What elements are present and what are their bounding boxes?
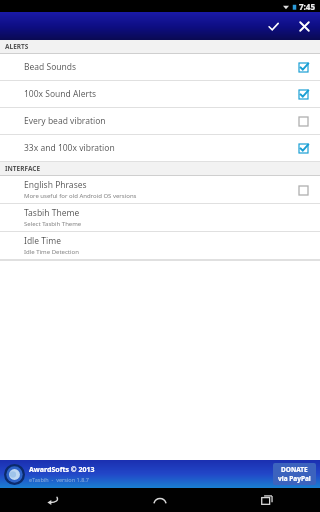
staticText: Idle Time Detection [24,248,79,256]
button[interactable]: AwardSofts © 2013 [0,460,320,488]
staticText: 33x and 100x vibration [24,142,115,154]
staticText: Select Tasbih Theme [24,220,82,228]
button[interactable]: Every bead vibration [0,108,320,134]
button[interactable]: Checked [294,139,312,157]
button[interactable]: Bead Sounds [0,54,320,80]
staticText: ALERTS [5,42,29,51]
button[interactable]: English Phrases [0,176,320,203]
button[interactable]: Back [0,488,106,512]
staticText: Every bead vibration [24,115,106,127]
button[interactable]: Unchecked [294,112,312,130]
staticText: Bead Sounds [24,61,77,73]
staticText: 7:45 [299,1,315,12]
staticText: DONATE [281,465,308,474]
staticText: Tasbih Theme [24,207,80,219]
staticText: 100x Sound Alerts [24,88,97,100]
staticText: Idle Time [24,235,61,247]
button[interactable]: 33x and 100x vibration [0,135,320,161]
button[interactable]: 100x Sound Alerts [0,81,320,107]
button[interactable]: Checked [294,85,312,103]
button[interactable]: Unchecked [294,181,312,199]
staticText: More useful for old Android OS versions [24,192,137,200]
button[interactable]: Cancel [288,12,320,40]
staticText: via PayPal [278,474,311,483]
staticText: AwardSofts © 2013 [29,465,95,475]
button[interactable]: Recent apps [213,488,320,512]
staticText: INTERFACE [5,164,41,173]
button[interactable]: Confirm [258,12,288,40]
button[interactable]: DONATE [273,463,316,485]
button[interactable]: Idle Time [0,232,320,259]
staticText: English Phrases [24,179,87,191]
button[interactable]: Home [106,488,213,512]
button[interactable]: Checked [294,58,312,76]
button[interactable]: Tasbih Theme [0,204,320,231]
staticText: eTasbih - version 1.8.7 [29,476,89,483]
